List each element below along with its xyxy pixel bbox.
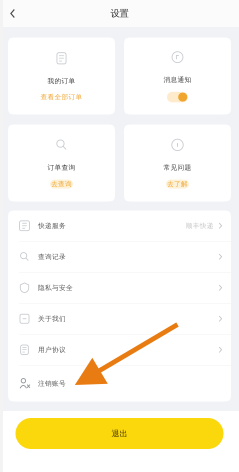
- button[interactable]: 用户协议: [8, 334, 231, 365]
- button[interactable]: 订单查询: [8, 124, 115, 201]
- staticText: 去了解: [167, 180, 188, 188]
- staticText: 我的订单: [47, 77, 75, 85]
- button[interactable]: 快递服务: [8, 210, 231, 241]
- staticText: 常见问题: [163, 163, 191, 172]
- staticText: 设置: [110, 8, 128, 19]
- button[interactable]: 查询记录: [8, 241, 231, 272]
- button[interactable]: 我的订单: [8, 37, 115, 114]
- staticText: 隐私与安全: [38, 284, 73, 292]
- staticText: 注销账号: [38, 379, 66, 388]
- staticText: 用户协议: [38, 346, 66, 354]
- button[interactable]: Back: [0, 0, 25, 27]
- staticText: 退出: [111, 429, 127, 438]
- button[interactable]: 消息通知: [124, 37, 231, 114]
- button[interactable]: 注销账号: [8, 365, 231, 401]
- staticText: 订单查询: [47, 163, 75, 172]
- staticText: 顺丰快递: [186, 222, 214, 230]
- button[interactable]: 关于我们: [8, 303, 231, 334]
- staticText: 快递服务: [38, 222, 66, 230]
- button[interactable]: 隐私与安全: [8, 272, 231, 303]
- staticText: 关于我们: [38, 315, 66, 323]
- button[interactable]: 常见问题: [124, 124, 231, 201]
- button[interactable]: 退出: [15, 418, 223, 449]
- staticText: 查询记录: [38, 253, 66, 261]
- staticText: 查看全部订单: [40, 93, 82, 101]
- staticText: 消息通知: [163, 76, 191, 84]
- staticText: 去查询: [51, 180, 72, 188]
